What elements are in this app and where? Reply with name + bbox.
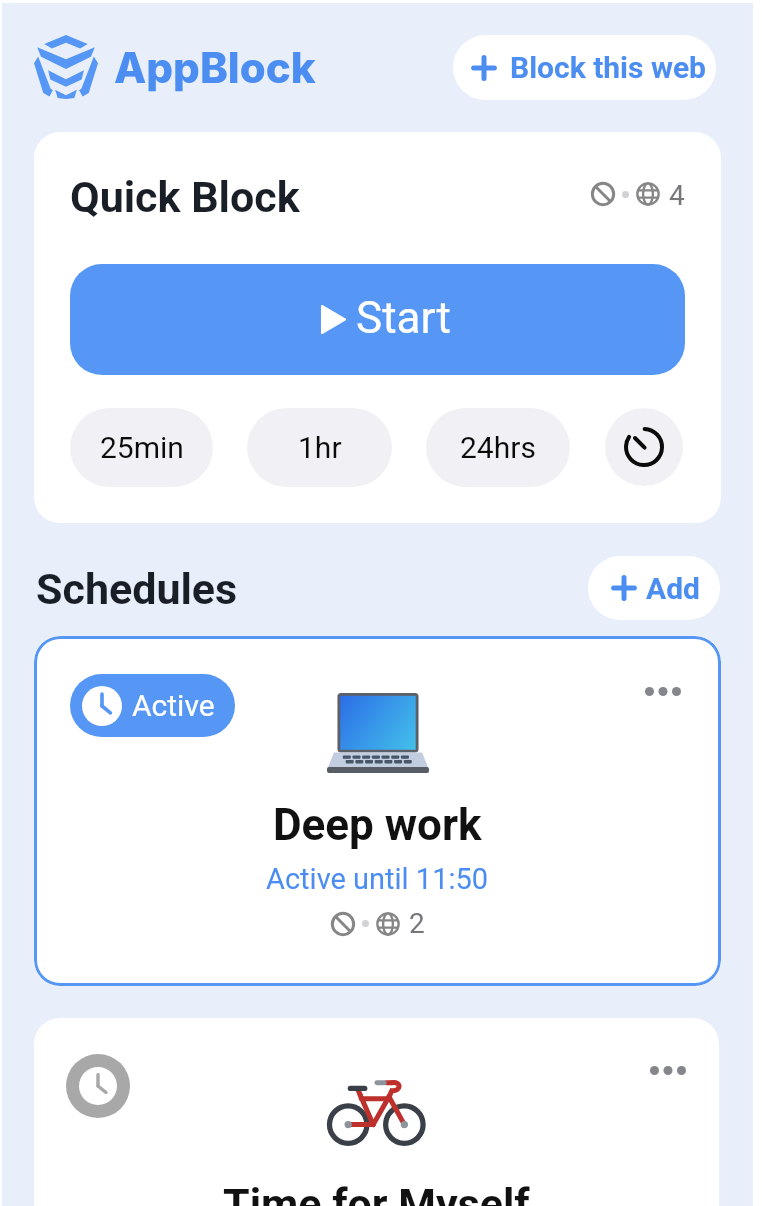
staticText: Active xyxy=(132,688,215,723)
staticText: Quick Block xyxy=(70,172,300,222)
staticText: Block this web xyxy=(510,50,706,85)
button[interactable]: More options xyxy=(650,1066,686,1075)
staticText: Deep work xyxy=(273,799,482,851)
staticText: Add xyxy=(646,571,700,606)
button[interactable]: Add xyxy=(588,556,720,620)
button[interactable]: 24hrs xyxy=(426,408,570,487)
button[interactable]: More options xyxy=(34,1018,719,1206)
staticText: 2 xyxy=(409,907,425,940)
staticText: Start xyxy=(356,292,451,344)
button[interactable]: Custom duration xyxy=(605,408,683,486)
button[interactable]: Start xyxy=(70,264,685,375)
button[interactable]: More options xyxy=(645,687,681,696)
button[interactable]: 1hr xyxy=(247,408,392,487)
staticText: 1hr xyxy=(298,430,342,465)
staticText: 4 xyxy=(669,179,685,209)
staticText: Time for Myself xyxy=(223,1179,530,1206)
staticText: Active until 11:50 xyxy=(266,862,489,896)
staticText: 25min xyxy=(100,430,184,465)
staticText: 24hrs xyxy=(460,430,536,465)
button[interactable]: Block this web xyxy=(453,35,716,100)
button[interactable]: Active xyxy=(34,636,721,986)
staticText: Schedules xyxy=(36,564,238,614)
button[interactable]: 25min xyxy=(70,408,213,487)
staticText: AppBlock xyxy=(114,42,316,93)
